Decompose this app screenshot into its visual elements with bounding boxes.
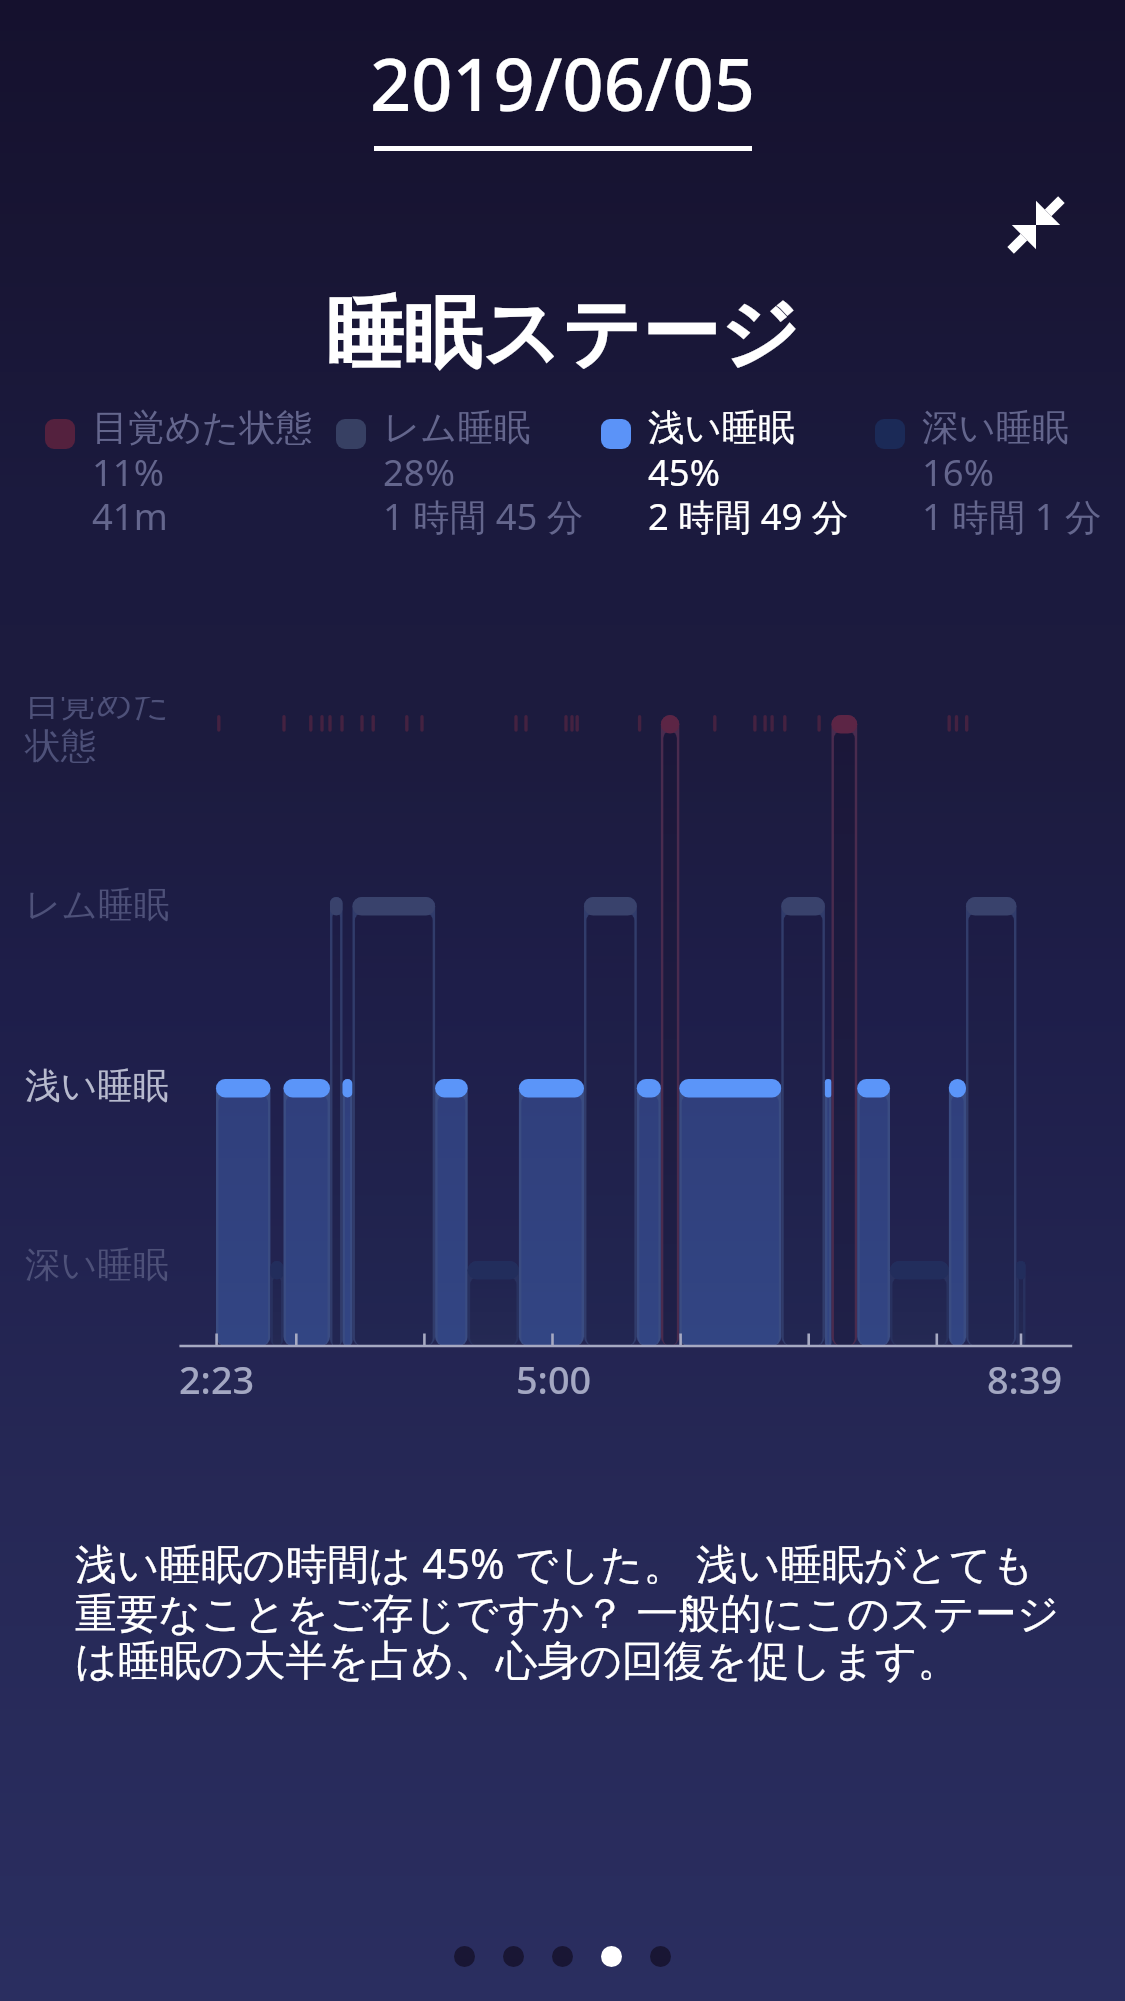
button[interactable]: 浅い睡眠: [601, 407, 802, 551]
staticText: 1 時間 45 分: [383, 491, 584, 541]
button[interactable]: レム睡眠: [336, 407, 537, 551]
staticText: レム睡眠: [25, 883, 170, 928]
staticText: 45%: [648, 447, 720, 497]
staticText: 5:00: [516, 1354, 592, 1405]
button[interactable]: Page 1: [454, 1946, 475, 1967]
staticText: 浅い睡眠: [25, 1064, 169, 1109]
button[interactable]: Collapse: [1006, 195, 1066, 255]
button[interactable]: Page 5: [650, 1946, 671, 1967]
button[interactable]: Page 2: [503, 1946, 524, 1967]
staticText: 睡眠ステージ: [0, 285, 1125, 383]
staticText: 浅い睡眠の時間は 45% でした。 浅い睡眠がとても重要なことをご存じですか？ …: [75, 1534, 1071, 1688]
staticText: 11%: [92, 447, 164, 497]
staticText: 2 時間 49 分: [648, 491, 849, 541]
staticText: 状態: [25, 724, 97, 769]
staticText: 16%: [922, 447, 994, 497]
staticText: 目覚めた状態: [92, 405, 313, 451]
staticText: 2019/06/05: [370, 34, 755, 132]
staticText: 深い睡眠: [922, 405, 1069, 451]
staticText: レム睡眠: [383, 405, 531, 451]
staticText: 41m: [92, 491, 168, 541]
staticText: 2:23: [179, 1354, 255, 1405]
staticText: 浅い睡眠: [648, 405, 795, 451]
staticText: 28%: [383, 447, 455, 497]
staticText: 目覚めた: [25, 697, 170, 726]
button[interactable]: 目覚めた状態: [45, 407, 266, 551]
button[interactable]: 深い睡眠: [875, 407, 1055, 551]
button[interactable]: Page 4: [601, 1946, 622, 1967]
staticText: 8:39: [987, 1354, 1063, 1405]
staticText: 1 時間 1 分: [922, 491, 1102, 541]
button[interactable]: Page 3: [552, 1946, 573, 1967]
button[interactable]: 2019/06/05: [352, 28, 773, 157]
staticText: 深い睡眠: [25, 1243, 169, 1285]
